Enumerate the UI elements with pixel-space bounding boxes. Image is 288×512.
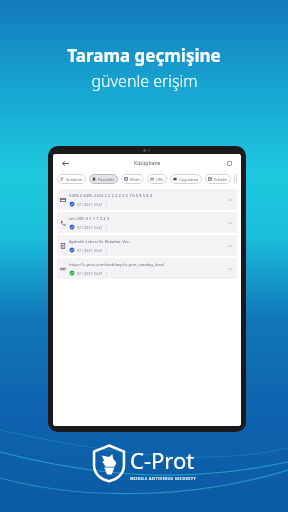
staticText: 07 / 2021 10:41 ⋮: [77, 202, 109, 207]
staticText: Etkinlik: [214, 177, 228, 182]
staticText: tel:+905 0 5 1 7 2 2 3: [69, 216, 110, 222]
staticText: Metin: [130, 177, 141, 182]
staticText: 5458 2 4455 2352 2 2 2 3 2 2 0 1 6 5 8 5…: [69, 193, 153, 199]
button[interactable]: Sıralama: [57, 174, 86, 184]
staticText: https://c-prot.com/web/asp/n-prot_catalo…: [69, 262, 164, 268]
button[interactable]: Daha fazla: [226, 242, 234, 250]
button[interactable]: Daha fazla: [226, 196, 234, 204]
staticText: 07 / 2021 10:41 ⋮: [77, 225, 109, 230]
button[interactable]: Daha fazla: [226, 265, 234, 273]
staticText: Kütüphane: [134, 160, 161, 167]
button[interactable]: Daha fazla: [226, 219, 234, 227]
button[interactable]: Geri: [59, 157, 71, 169]
button[interactable]: Etkinlik: [205, 174, 231, 184]
staticText: güvenle erişim: [91, 70, 198, 92]
staticText: 07 / 2021 10:41 ⋮: [77, 271, 109, 276]
button[interactable]: Metin: [121, 174, 144, 184]
staticText: Uygulama: [179, 177, 199, 182]
button[interactable]: Aydınlık Lekesi Ve İlkbahar Ver...: [57, 235, 237, 256]
button[interactable]: Uygulama: [170, 174, 202, 184]
staticText: Tarama geçmişine: [67, 44, 221, 67]
staticText: 07 / 2021 10:41 ⋮: [77, 248, 109, 253]
staticText: Sıralama: [66, 177, 83, 182]
staticText: URL: [156, 177, 164, 182]
button[interactable]: Kişi: [234, 174, 237, 184]
button[interactable]: Favoriler: [89, 174, 118, 184]
button[interactable]: URL: [147, 174, 167, 184]
staticText: MOBILE ANTIVIRUS SECURITY: [130, 476, 197, 481]
button[interactable]: https://c-prot.com/web/asp/n-prot_catalo…: [57, 258, 237, 279]
button[interactable]: tel:+905 0 5 1 7 2 2 3: [57, 212, 237, 233]
button[interactable]: Menü: [223, 157, 235, 169]
staticText: Favoriler: [98, 177, 115, 182]
button[interactable]: 5458 2 4455 2352 2 2 2 3 2 2 0 1 6 5 8 5…: [57, 189, 237, 210]
staticText: C-Prot: [130, 445, 195, 475]
staticText: Aydınlık Lekesi Ve İlkbahar Ver...: [69, 239, 132, 245]
